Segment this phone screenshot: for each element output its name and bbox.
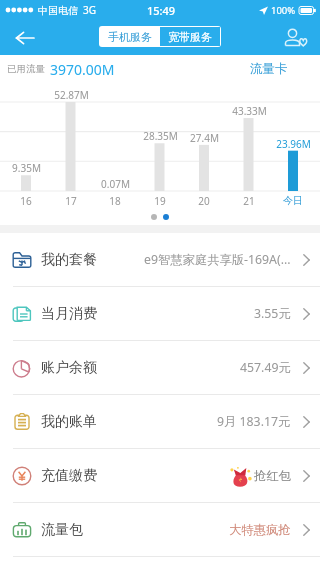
staticText: 52.87M [54, 88, 89, 102]
staticText: 23.96M [276, 137, 311, 151]
button[interactable]: 手机服务 [100, 27, 160, 46]
button[interactable]: 宽带服务 [160, 27, 220, 46]
button[interactable]: 我的账单 [0, 395, 320, 449]
staticText: 100% [271, 4, 296, 17]
button[interactable]: Back [0, 20, 48, 55]
staticText: 账户余额 [41, 359, 97, 377]
staticText: 15:49 [147, 3, 176, 18]
button[interactable]: 充值缴费 [0, 449, 320, 503]
staticText: 19 [154, 194, 166, 208]
button[interactable]: 我的套餐 [0, 233, 320, 287]
button[interactable]: 流量包 [0, 503, 320, 557]
staticText: 3970.00M [50, 60, 115, 79]
staticText: 我的账单 [41, 413, 97, 431]
staticText: 宽带服务 [168, 30, 212, 44]
staticText: e9智慧家庭共享版-169A(... [144, 251, 291, 268]
staticText: 3.55元 [254, 305, 291, 322]
button[interactable]: 流量卡 [250, 59, 288, 79]
staticText: 43.33M [232, 104, 267, 118]
button[interactable]: 当月消费 [0, 287, 320, 341]
staticText: 17 [65, 194, 77, 208]
staticText: 当月消费 [41, 305, 97, 323]
staticText: 已用流量 [7, 63, 45, 75]
staticText: 21 [243, 194, 255, 208]
staticText: 27.4M [190, 131, 219, 145]
staticText: 9月 183.17元 [217, 413, 291, 430]
staticText: 大特惠疯抢 [229, 522, 291, 537]
staticText: 16 [20, 194, 32, 208]
staticText: 0.07M [101, 177, 130, 191]
staticText: 手机服务 [108, 30, 152, 44]
staticText: 流量包 [41, 521, 83, 539]
staticText: 28.35M [143, 129, 178, 143]
button[interactable]: Account [276, 20, 320, 55]
button[interactable]: 账户余额 [0, 341, 320, 395]
staticText: 20 [198, 194, 210, 208]
staticText: 18 [109, 194, 121, 208]
staticText: 我的套餐 [41, 251, 97, 269]
staticText: 今日 [283, 194, 303, 207]
staticText: 抢红包 [254, 468, 291, 483]
staticText: 中国电信 [38, 4, 78, 17]
staticText: 充值缴费 [41, 467, 97, 485]
staticText: 流量卡 [250, 61, 288, 77]
staticText: 457.49元 [240, 359, 291, 376]
staticText: 9.35M [12, 161, 41, 175]
staticText: 3G [83, 3, 96, 17]
